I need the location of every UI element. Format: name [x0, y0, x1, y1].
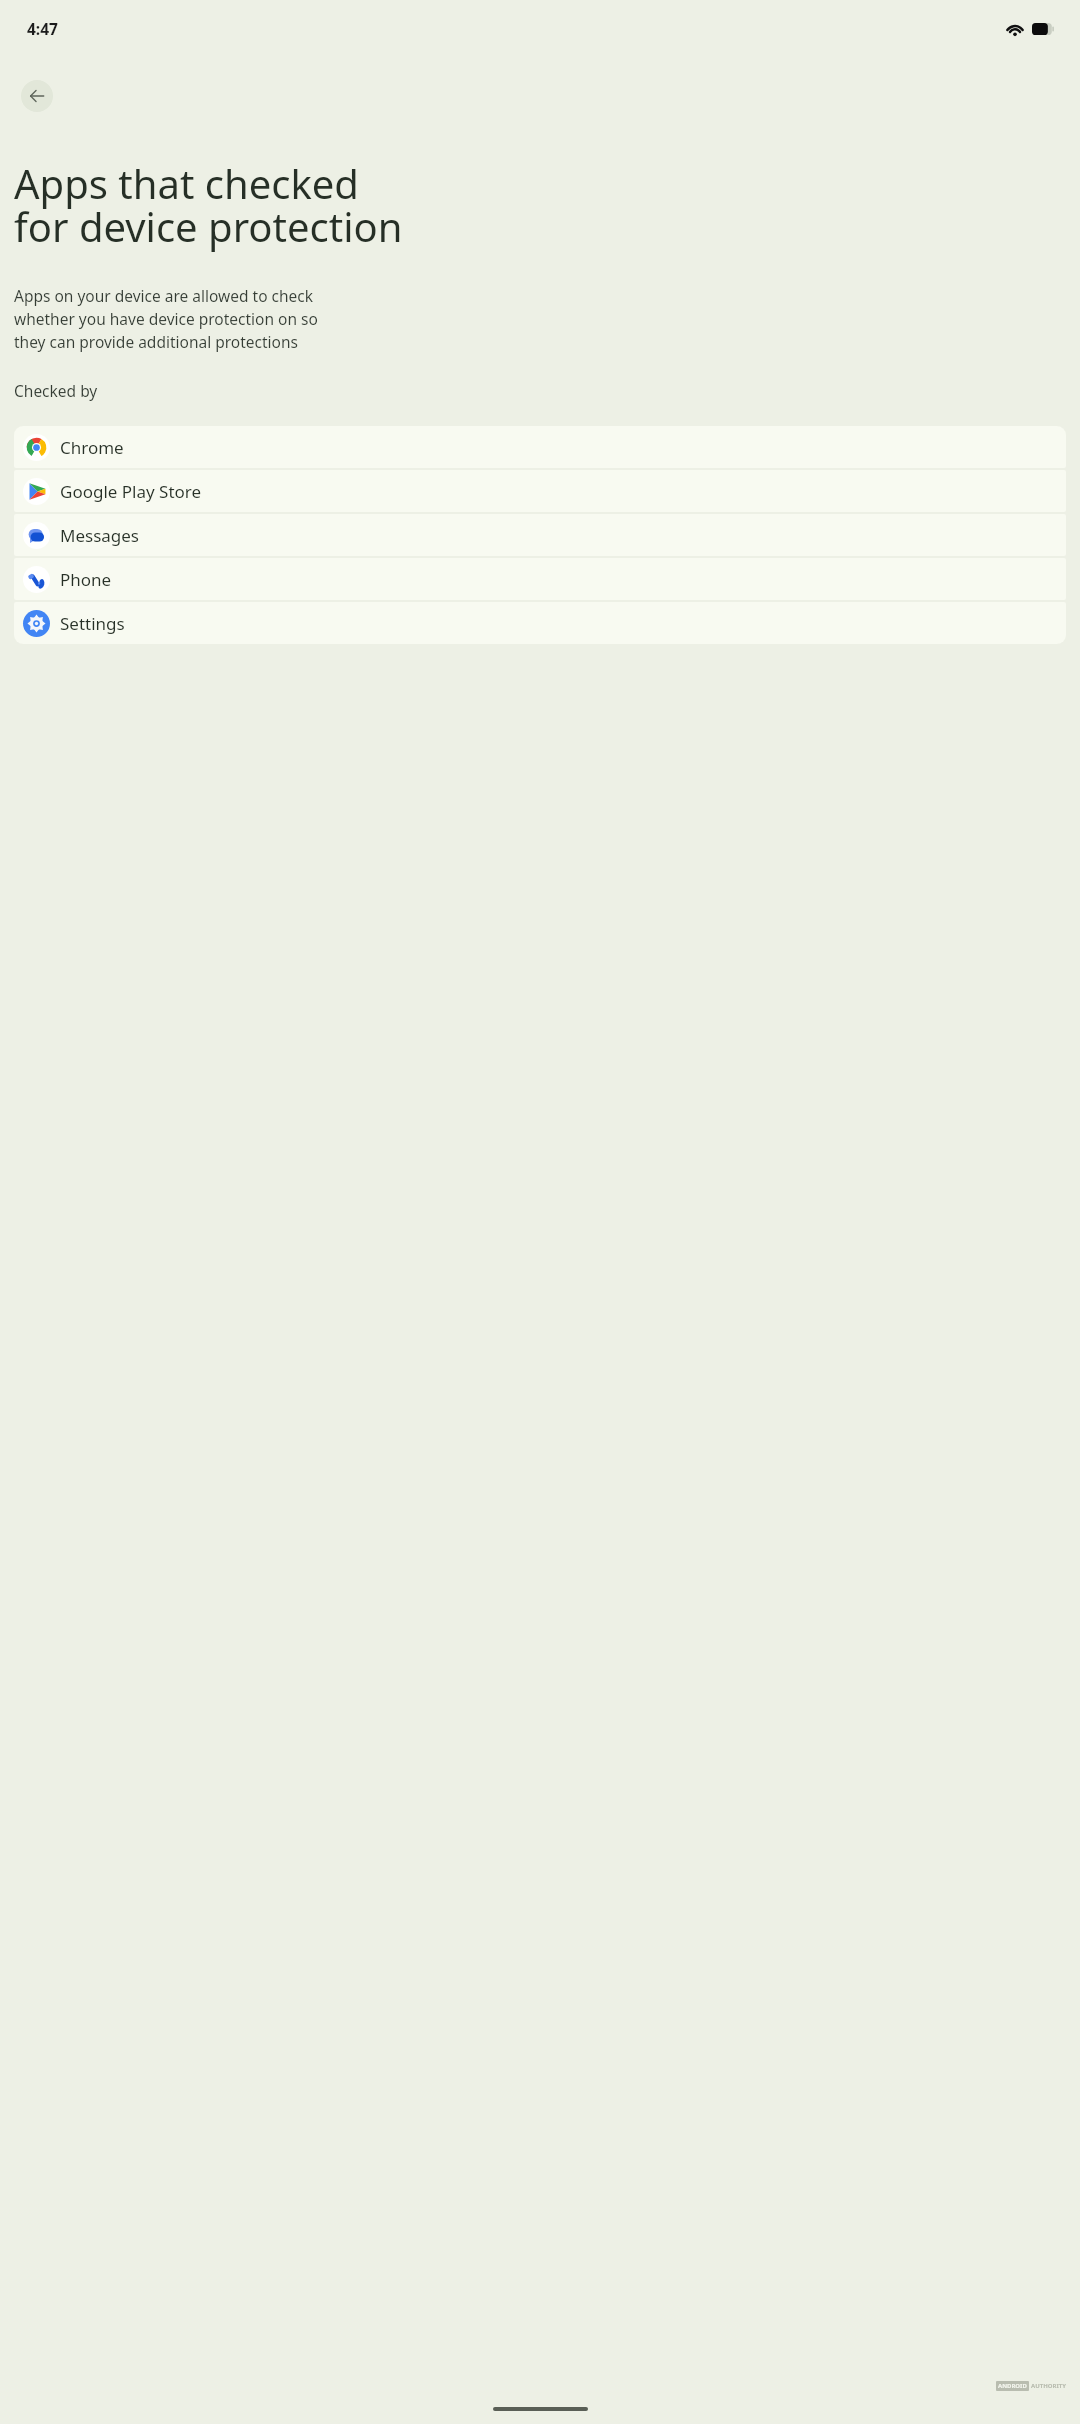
- button[interactable]: Back: [21, 80, 53, 112]
- staticText: Checked by: [14, 380, 98, 401]
- staticText: Chrome: [60, 436, 124, 459]
- button[interactable]: Google Play Store: [14, 470, 1066, 512]
- staticText: Apps on your device are allowed to check…: [14, 285, 318, 353]
- staticText: Settings: [60, 612, 125, 635]
- button[interactable]: Phone: [14, 558, 1066, 600]
- staticText: Google Play Store: [60, 480, 202, 503]
- staticText: AUTHORITY: [1031, 2382, 1066, 2390]
- button[interactable]: Chrome: [14, 426, 1066, 468]
- staticText: Phone: [60, 568, 112, 591]
- button[interactable]: Messages: [14, 514, 1066, 556]
- button[interactable]: Settings: [14, 602, 1066, 644]
- staticText: 4:47: [27, 18, 58, 39]
- staticText: Apps that checked for device protection: [14, 156, 403, 253]
- staticText: Messages: [60, 524, 140, 547]
- staticText: ANDROID: [998, 2382, 1027, 2390]
